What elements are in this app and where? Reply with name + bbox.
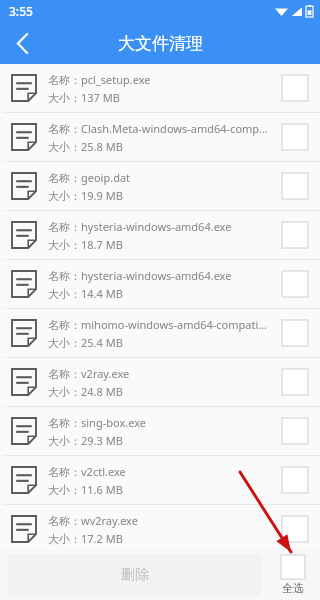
staticText: 25.4 MB [81, 335, 123, 350]
staticText: 名称： [48, 514, 81, 528]
staticText: sing-box.exe [81, 415, 146, 430]
button[interactable]: Select file [276, 461, 314, 499]
button[interactable]: 名称： [0, 211, 320, 259]
staticText: 删除 [121, 566, 149, 584]
staticText: 大文件清理 [118, 33, 203, 54]
staticText: 14.4 MB [81, 286, 123, 301]
staticText: 名称： [48, 220, 81, 234]
staticText: 25.8 MB [81, 139, 123, 154]
staticText: 大小： [48, 532, 81, 546]
staticText: 名称： [48, 367, 81, 381]
staticText: geoip.dat [81, 170, 131, 185]
button[interactable]: 删除 [8, 554, 261, 596]
staticText: 全选 [282, 581, 304, 595]
button[interactable]: 名称： [0, 64, 320, 112]
staticText: wv2ray.exe [81, 513, 138, 528]
staticText: 名称： [48, 171, 81, 185]
staticText: 名称： [48, 318, 81, 332]
button[interactable]: Select file [276, 216, 314, 254]
button[interactable]: 名称： [0, 505, 320, 553]
button[interactable]: Select file [276, 314, 314, 352]
staticText: Clash.Meta-windows-amd64-compatibl… [81, 121, 270, 136]
button[interactable]: 名称： [0, 162, 320, 210]
staticText: 名称： [48, 122, 81, 136]
button[interactable]: Select file [276, 363, 314, 401]
staticText: 24.8 MB [81, 384, 123, 399]
staticText: 大小： [48, 238, 81, 252]
staticText: 29.3 MB [81, 433, 123, 448]
staticText: 17.2 MB [81, 531, 123, 546]
staticText: mihomo-windows-amd64-compatible.exe [81, 317, 270, 332]
button[interactable]: Select file [276, 118, 314, 156]
staticText: v2ray.exe [81, 366, 130, 381]
staticText: hysteria-windows-amd64.exe [81, 268, 232, 283]
button[interactable]: 名称： [0, 260, 320, 308]
staticText: 11.6 MB [81, 482, 123, 497]
button[interactable]: 全选 [271, 555, 315, 595]
staticText: 大小： [48, 385, 81, 399]
staticText: hysteria-windows-amd64.exe [81, 219, 232, 234]
button[interactable]: Select file [276, 510, 314, 548]
staticText: 大小： [48, 91, 81, 105]
staticText: 大小： [48, 189, 81, 203]
staticText: 名称： [48, 416, 81, 430]
staticText: 名称： [48, 465, 81, 479]
button[interactable]: Select file [276, 69, 314, 107]
button[interactable]: Select file [276, 412, 314, 450]
button[interactable]: 名称： [0, 456, 320, 504]
staticText: 大小： [48, 336, 81, 350]
button[interactable]: Back [0, 22, 44, 64]
staticText: 大小： [48, 140, 81, 154]
staticText: 137 MB [81, 90, 120, 105]
staticText: 19.9 MB [81, 188, 123, 203]
staticText: 18.7 MB [81, 237, 123, 252]
staticText: pcl_setup.exe [81, 72, 151, 87]
button[interactable]: Select file [276, 167, 314, 205]
staticText: 大小： [48, 434, 81, 448]
staticText: 3:55 [9, 3, 33, 19]
staticText: 名称： [48, 269, 81, 283]
staticText: 名称： [48, 73, 81, 87]
button[interactable]: 名称： [0, 407, 320, 455]
staticText: v2ctl.exe [81, 464, 126, 479]
button[interactable]: Select file [276, 265, 314, 303]
staticText: 大小： [48, 483, 81, 497]
button[interactable]: 名称： [0, 309, 320, 357]
staticText: 大小： [48, 287, 81, 301]
button[interactable]: 名称： [0, 358, 320, 406]
button[interactable]: 名称： [0, 113, 320, 161]
